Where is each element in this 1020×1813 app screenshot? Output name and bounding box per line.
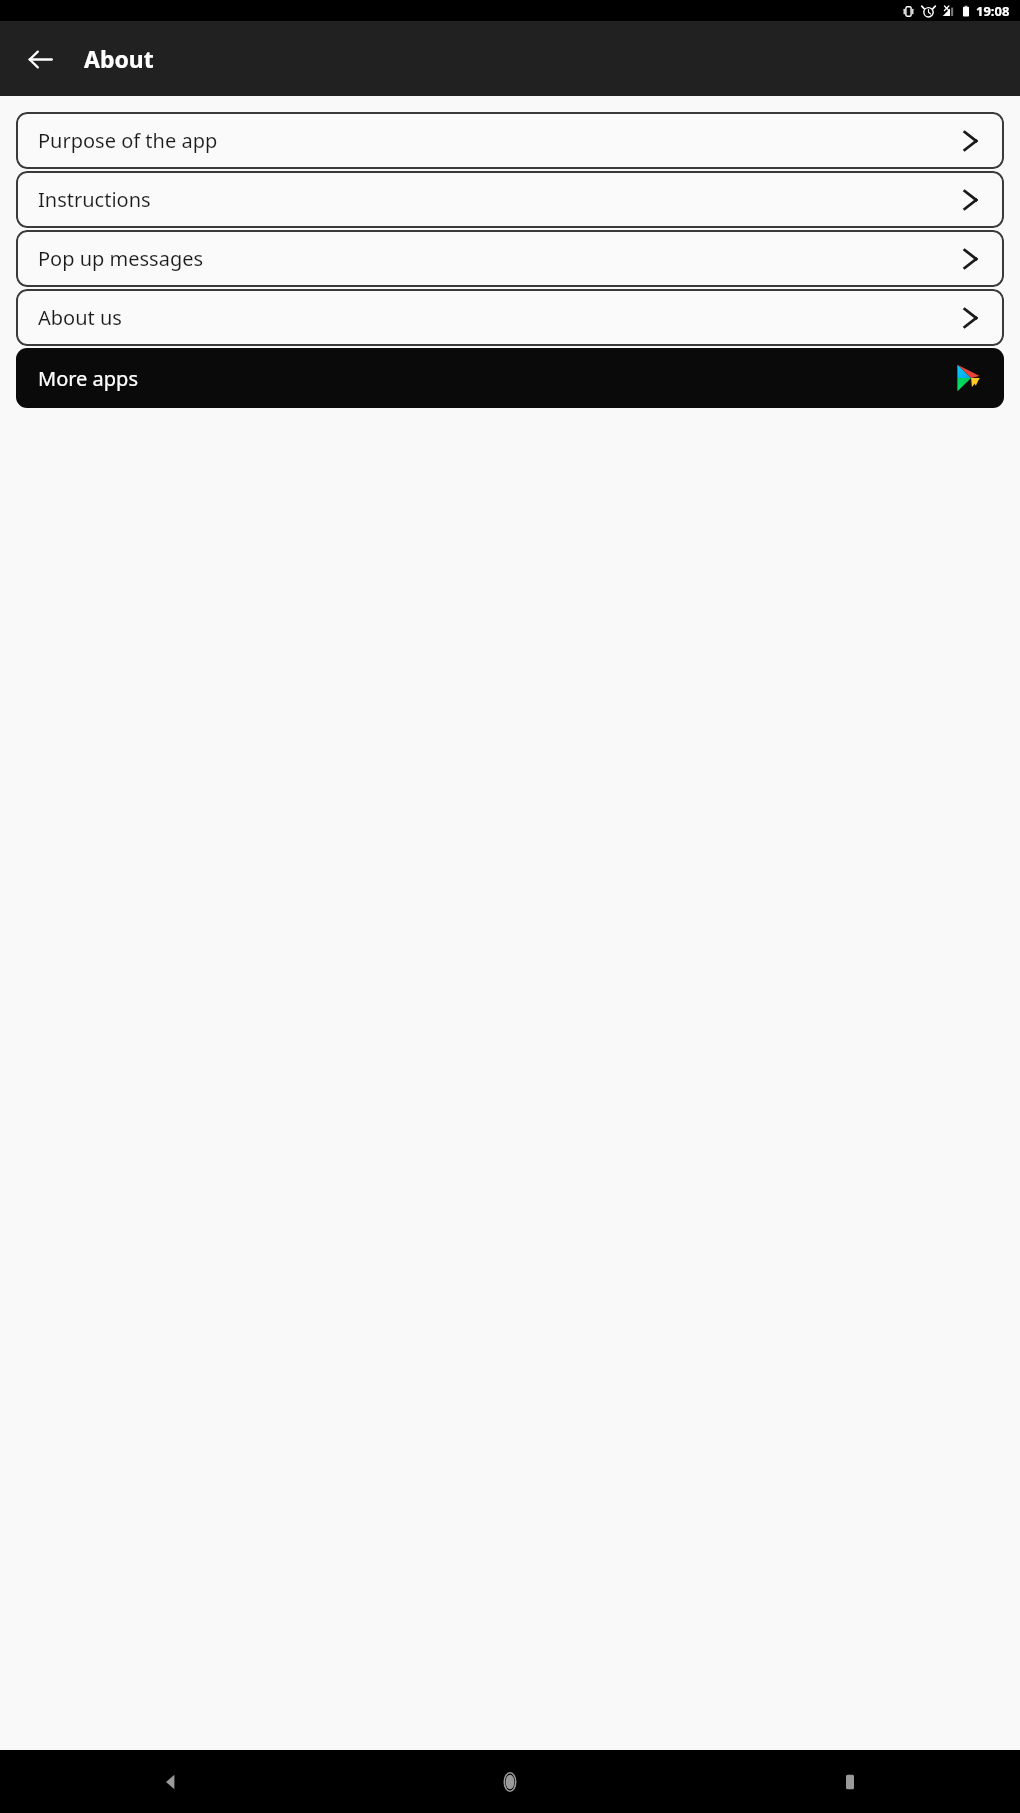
staticText: 19:08 [976, 2, 1010, 20]
staticText: Purpose of the app [38, 127, 218, 154]
button[interactable]: About us [16, 289, 1004, 346]
button[interactable]: Back [14, 33, 66, 85]
button[interactable]: Pop up messages [16, 230, 1004, 287]
staticText: About [84, 43, 154, 74]
staticText: More apps [38, 365, 138, 392]
button[interactable]: Back [0, 1750, 340, 1813]
button[interactable]: More apps [16, 348, 1004, 408]
button[interactable]: Instructions [16, 171, 1004, 228]
staticText: About us [38, 304, 122, 331]
button[interactable]: Purpose of the app [16, 112, 1004, 169]
button[interactable]: Recent apps [680, 1750, 1020, 1813]
staticText: Pop up messages [38, 245, 204, 272]
staticText: Instructions [38, 186, 151, 213]
button[interactable]: Home [340, 1750, 680, 1813]
